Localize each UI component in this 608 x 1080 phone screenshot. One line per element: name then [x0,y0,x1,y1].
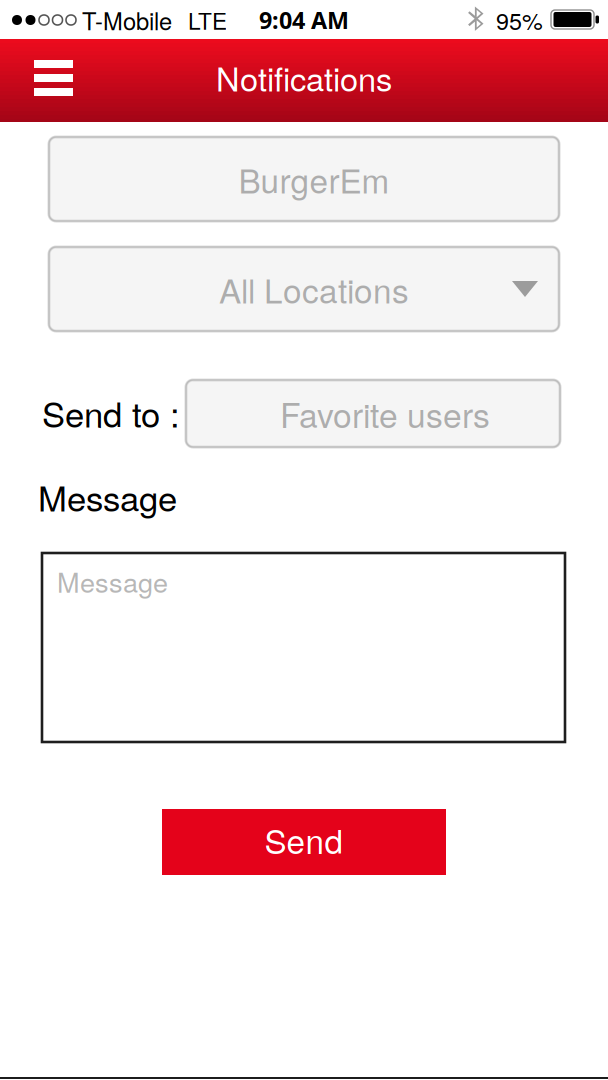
staticText: Message [57,562,168,600]
button[interactable]: Favorite users [186,380,560,447]
staticText: LTE [188,4,227,36]
staticText: T-Mobile [82,3,172,37]
staticText: Favorite users [280,389,490,437]
button[interactable]: BurgerEm [49,137,559,221]
staticText: 9:04 AM [259,4,349,36]
button[interactable]: Menu [0,39,73,122]
staticText: BurgerEm [238,155,389,203]
button[interactable]: Send [162,809,446,875]
staticText: Notifications [216,54,392,101]
button[interactable]: All Locations [49,247,559,331]
staticText: All Locations [219,265,409,313]
staticText: 95% [496,3,543,37]
staticText: Send [264,816,343,863]
staticText: Message [38,472,177,521]
staticText: Send to : [42,388,180,437]
